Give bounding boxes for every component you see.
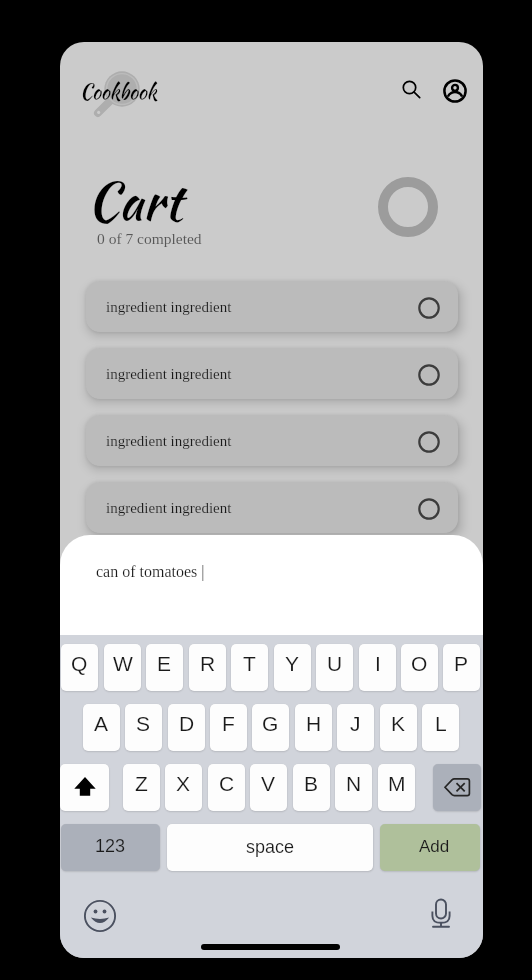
button[interactable]: J [337,704,374,751]
button[interactable]: Account [437,73,473,109]
staticText: Cookbook [80,77,157,106]
button[interactable]: Voice input [421,896,461,936]
button[interactable]: U [316,644,353,691]
staticText: L [435,712,447,735]
staticText: Q [71,652,88,675]
staticText: E [157,652,172,675]
staticText: J [350,712,361,735]
staticText: Z [135,772,148,795]
staticText: F [222,712,235,735]
staticText: V [261,772,276,795]
button[interactable]: F [210,704,247,751]
button[interactable]: E [146,644,183,691]
button[interactable]: A [83,704,120,751]
staticText: can of tomatoes | [96,563,205,581]
staticText: Cart [87,164,183,239]
button[interactable]: M [378,764,415,811]
button[interactable]: ingredient ingredient [86,348,458,399]
staticText: ingredient ingredient [106,433,232,450]
button[interactable]: Z [123,764,160,811]
button[interactable]: O [401,644,438,691]
button[interactable]: W [104,644,141,691]
staticText: C [219,772,235,795]
staticText: 123 [95,836,126,856]
button[interactable]: K [380,704,417,751]
button[interactable]: B [293,764,330,811]
button[interactable]: S [125,704,162,751]
button[interactable]: V [250,764,287,811]
button[interactable]: ingredient ingredient [86,415,458,466]
staticText: D [179,712,195,735]
staticText: K [391,712,406,735]
staticText: W [113,652,133,675]
staticText: X [176,772,191,795]
staticText: R [200,652,216,675]
button[interactable]: Y [274,644,311,691]
button[interactable]: 123 [61,824,160,871]
button[interactable]: Q [61,644,98,691]
button[interactable]: ingredient ingredient [86,482,458,533]
staticText: B [304,772,319,795]
staticText: I [375,652,381,675]
button[interactable]: Backspace [433,764,481,811]
button[interactable]: Emoji [80,896,120,936]
staticText: P [454,652,469,675]
button[interactable]: Shift [60,764,109,811]
button[interactable]: H [295,704,332,751]
staticText: A [94,712,109,735]
staticText: M [388,772,406,795]
button[interactable]: D [168,704,205,751]
staticText: Add [419,837,450,856]
button[interactable]: G [252,704,289,751]
button[interactable]: L [422,704,459,751]
button[interactable]: I [359,644,396,691]
button[interactable]: X [165,764,202,811]
staticText: ingredient ingredient [106,500,232,517]
button[interactable]: N [335,764,372,811]
staticText: T [243,652,256,675]
button[interactable]: T [231,644,268,691]
staticText: G [262,712,279,735]
staticText: O [411,652,428,675]
button[interactable]: R [189,644,226,691]
staticText: ingredient ingredient [106,299,232,316]
staticText: space [246,837,295,857]
staticText: 0 of 7 completed [97,230,202,247]
button[interactable]: P [443,644,480,691]
staticText: H [306,712,322,735]
button[interactable]: space [167,824,373,871]
button[interactable]: C [208,764,245,811]
staticText: S [136,712,151,735]
button[interactable]: Search [393,71,429,107]
staticText: U [327,652,343,675]
button[interactable]: Add [380,824,480,871]
staticText: N [346,772,362,795]
staticText: ingredient ingredient [106,366,232,383]
button[interactable]: ingredient ingredient [86,281,458,332]
staticText: Y [285,652,300,675]
